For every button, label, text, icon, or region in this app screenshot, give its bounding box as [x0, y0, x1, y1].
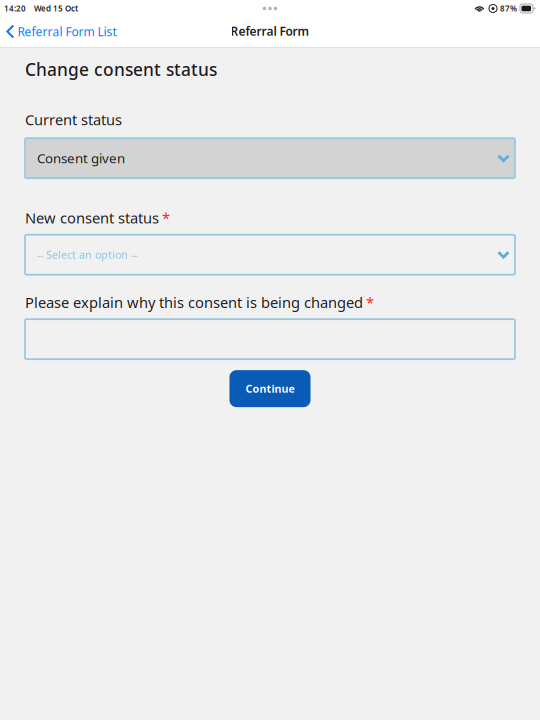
staticText: 14:20 — [4, 3, 26, 14]
staticText: New consent status — [25, 208, 159, 228]
staticText: 87% — [500, 3, 517, 14]
staticText: * — [162, 208, 170, 228]
staticText: Please explain why this consent is being… — [25, 293, 363, 312]
staticText: * — [366, 293, 374, 312]
button[interactable]: Explanation text field — [25, 319, 515, 359]
staticText: -- Select an option -- — [37, 248, 137, 262]
button[interactable]: -- Select an option -- — [25, 235, 515, 275]
button[interactable]: Referral Form List — [0, 18, 120, 45]
staticText: Referral Form — [230, 23, 309, 39]
staticText: Consent given — [37, 149, 125, 167]
staticText: Continue — [245, 382, 294, 396]
button[interactable]: Consent given — [25, 138, 515, 178]
button[interactable]: Continue — [229, 370, 310, 407]
staticText: Referral Form List — [17, 23, 116, 39]
staticText: Wed 15 Oct — [34, 3, 78, 14]
staticText: Current status — [25, 110, 122, 129]
staticText: Change consent status — [25, 58, 217, 81]
